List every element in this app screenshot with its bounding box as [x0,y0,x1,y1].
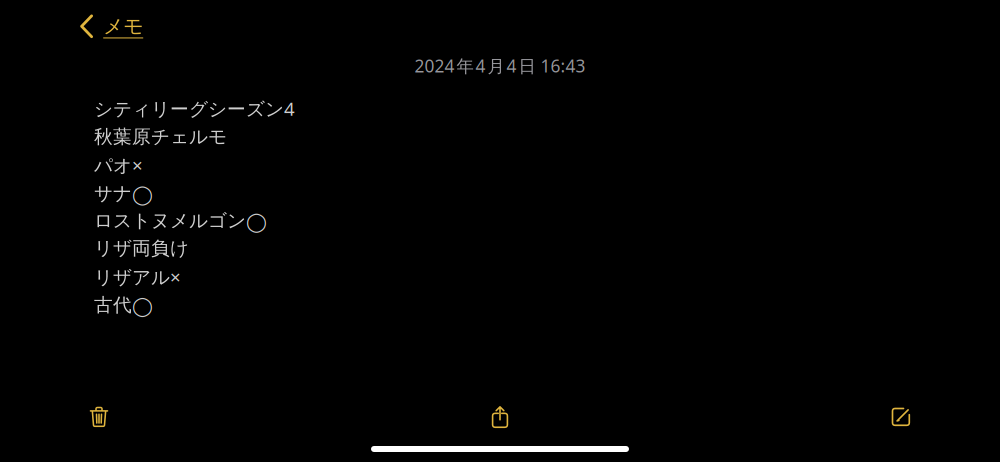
staticText: 2024 年 4 月 4 日 16:43 [414,54,585,78]
button[interactable]: Delete [77,395,121,439]
staticText: シティリーグシーズン4 [94,96,295,121]
staticText: リザ両負け [94,237,189,260]
button[interactable]: メモ [74,9,149,44]
button[interactable]: New note [879,395,923,439]
staticText: 秋葉原チェルモ [94,125,227,148]
staticText: サナ◯ [94,182,153,205]
button[interactable]: Share [478,395,522,439]
staticText: ロストヌメルゴン◯ [94,209,267,232]
staticText: 古代◯ [94,294,153,316]
staticText: リザアル× [94,264,181,289]
staticText: パオ× [94,153,143,177]
staticText: メモ [103,14,143,39]
